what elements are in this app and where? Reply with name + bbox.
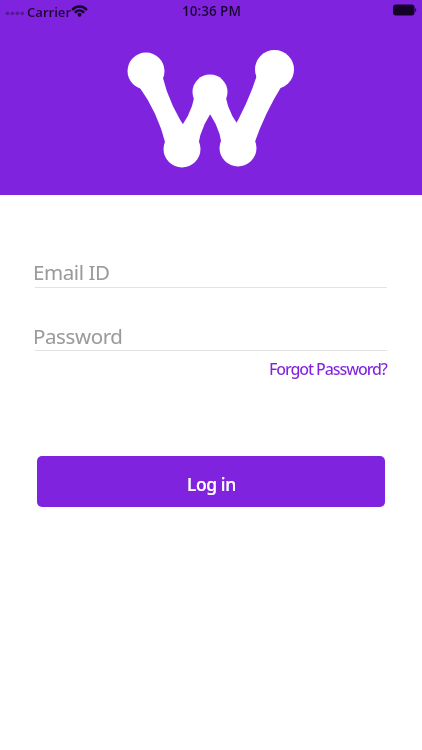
staticText: Forgot Password? [269, 358, 387, 380]
staticText: Email ID [33, 258, 110, 286]
button[interactable]: Forgot Password? [269, 358, 387, 380]
button[interactable]: Log in [37, 456, 385, 507]
staticText: Log in [187, 472, 236, 496]
staticText: 10:36 PM [182, 2, 241, 20]
staticText: Carrier [27, 3, 72, 21]
staticText: Password [33, 322, 123, 350]
